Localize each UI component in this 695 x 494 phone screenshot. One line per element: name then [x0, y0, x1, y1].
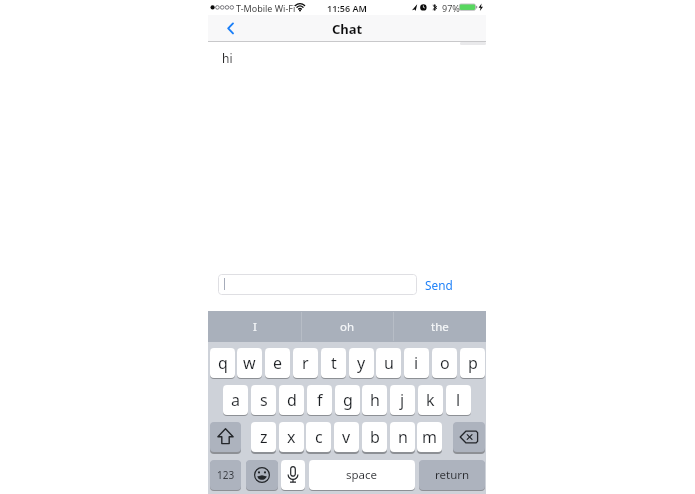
button[interactable] [281, 460, 305, 490]
staticText: hi [222, 50, 233, 66]
button[interactable]: 123 [210, 460, 241, 490]
button[interactable]: k [418, 385, 443, 415]
staticText: r [302, 352, 309, 374]
staticText: the [431, 319, 449, 335]
button[interactable]: return [419, 460, 485, 490]
staticText: I [253, 319, 257, 335]
button[interactable]: j [390, 385, 415, 415]
button[interactable]: h [362, 385, 387, 415]
staticText: T-Mobile Wi-Fi [236, 2, 296, 14]
button[interactable]: oh [301, 311, 394, 342]
staticText: v [342, 426, 351, 448]
staticText: f [317, 389, 323, 411]
staticText: c [315, 426, 323, 448]
button[interactable] [453, 422, 485, 452]
staticText: k [426, 389, 435, 411]
staticText: 97% [442, 2, 460, 14]
staticText: oh [340, 319, 355, 335]
button[interactable]: Send [421, 274, 483, 295]
staticText: j [400, 389, 405, 411]
staticText: return [435, 467, 470, 483]
button[interactable]: u [376, 348, 401, 378]
staticText: 11:56 AM [327, 2, 367, 14]
button[interactable]: l [446, 385, 471, 415]
button[interactable] [210, 422, 241, 452]
button[interactable]: q [210, 348, 235, 378]
button[interactable]: I [208, 311, 301, 342]
button[interactable]: r [293, 348, 318, 378]
staticText: p [468, 352, 478, 374]
staticText: o [440, 352, 450, 374]
button[interactable]: m [417, 422, 442, 452]
button[interactable]: g [335, 385, 360, 415]
staticText: i [414, 352, 419, 374]
staticText: Chat [332, 20, 363, 38]
staticText: space [346, 467, 378, 483]
button[interactable]: a [223, 385, 248, 415]
button[interactable]: t [321, 348, 346, 378]
staticText: e [273, 352, 283, 374]
button[interactable]: the [393, 311, 486, 342]
staticText: d [287, 389, 297, 411]
button[interactable]: v [334, 422, 359, 452]
button[interactable] [218, 274, 417, 295]
staticText: q [218, 352, 228, 374]
button[interactable]: d [279, 385, 304, 415]
staticText: g [343, 389, 353, 411]
button[interactable]: o [432, 348, 457, 378]
staticText: 123 [217, 468, 235, 482]
button[interactable]: e [265, 348, 290, 378]
staticText: u [384, 352, 394, 374]
button[interactable]: c [306, 422, 331, 452]
button[interactable]: i [404, 348, 429, 378]
button[interactable]: w [237, 348, 262, 378]
staticText: Send [425, 277, 453, 293]
button[interactable]: p [460, 348, 485, 378]
staticText: b [370, 426, 380, 448]
staticText: t [331, 352, 337, 374]
staticText: x [287, 426, 296, 448]
staticText: w [243, 352, 256, 374]
staticText: s [260, 389, 268, 411]
button[interactable]: n [390, 422, 415, 452]
staticText: m [422, 426, 437, 448]
button[interactable] [216, 15, 246, 42]
staticText: a [231, 389, 240, 411]
button[interactable]: z [251, 422, 276, 452]
button[interactable]: space [309, 460, 415, 490]
button[interactable]: x [279, 422, 304, 452]
button[interactable]: y [349, 348, 374, 378]
staticText: h [370, 389, 380, 411]
staticText: l [456, 389, 461, 411]
button[interactable]: b [362, 422, 387, 452]
staticText: n [398, 426, 408, 448]
button[interactable]: s [251, 385, 276, 415]
button[interactable] [246, 460, 278, 490]
staticText: z [260, 426, 268, 448]
button[interactable]: f [307, 385, 332, 415]
staticText: y [357, 352, 366, 374]
